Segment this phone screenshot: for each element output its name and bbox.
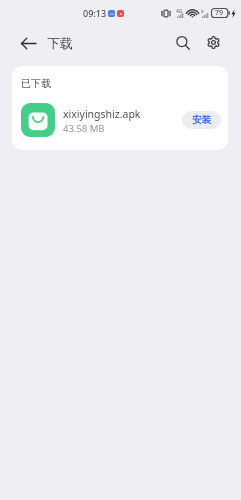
button[interactable]: 安装: [182, 111, 221, 129]
staticText: 09:13: [83, 7, 107, 19]
staticText: x: [201, 8, 204, 15]
staticText: 4G: [176, 8, 183, 15]
button[interactable]: Settings: [202, 32, 224, 54]
button[interactable]: xixiyingshiz.apk: [12, 98, 228, 142]
staticText: 79: [215, 8, 224, 18]
staticText: 已下载: [21, 77, 51, 90]
staticText: xixiyingshiz.apk: [63, 107, 141, 121]
staticText: 下载: [47, 35, 73, 51]
staticText: 43.58 MB: [63, 122, 105, 135]
button[interactable]: Back: [17, 32, 39, 54]
staticText: 安装: [192, 114, 211, 126]
button[interactable]: Search: [172, 32, 194, 54]
